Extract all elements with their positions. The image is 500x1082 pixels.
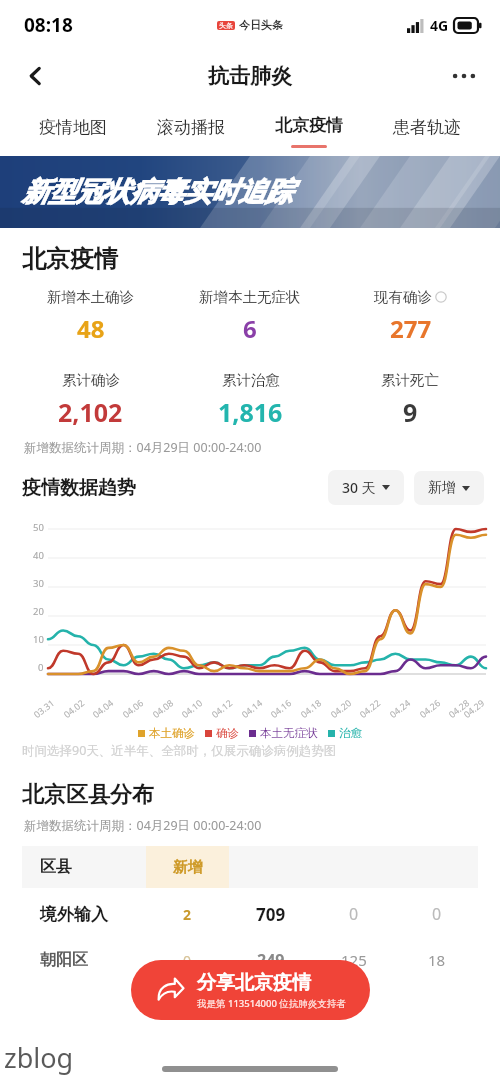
button[interactable]: 本土确诊	[138, 726, 195, 740]
button[interactable]: 本土无症状	[249, 726, 318, 740]
button[interactable]: 疫情地图	[14, 102, 132, 150]
staticText: 48	[77, 312, 105, 345]
button[interactable]: Back	[14, 54, 58, 98]
staticText: 10	[33, 633, 44, 646]
button[interactable]: 滚动播报	[132, 102, 250, 150]
staticText: 新增本土无症状	[199, 288, 301, 306]
staticText: 0	[38, 661, 44, 674]
staticText: 1,816	[218, 395, 283, 429]
staticText: 北京疫情	[275, 115, 343, 136]
staticText: 277	[390, 312, 432, 345]
button[interactable]: More options	[442, 54, 486, 98]
staticText: 累计确诊	[62, 371, 120, 389]
button[interactable]: 确诊	[205, 726, 239, 740]
button[interactable]: 累计死亡	[381, 371, 439, 429]
staticText: 北京区县分布	[22, 781, 154, 809]
staticText: 时间选择90天、近半年、全部时，仅展示确诊病例趋势图	[22, 742, 337, 759]
staticText: 新增数据统计周期：04月29日 00:00-24:00	[24, 817, 262, 834]
staticText: 患者轨迹	[393, 117, 461, 138]
button[interactable]: 30 天	[328, 470, 404, 505]
button[interactable]: 治愈	[328, 726, 362, 740]
staticText: 现有确诊	[374, 288, 432, 306]
staticText: 04.29	[461, 696, 487, 720]
staticText: 0	[432, 903, 442, 925]
staticText: 新增数据统计周期：04月29日 00:00-24:00	[24, 439, 262, 456]
button[interactable]: 新增	[414, 471, 484, 505]
staticText: 04.26	[417, 696, 443, 720]
staticText: 抗击肺炎	[208, 63, 292, 89]
staticText: 50	[33, 521, 44, 534]
staticText: 40	[33, 549, 44, 562]
button[interactable]: 朝阳区	[22, 940, 478, 980]
staticText: 04.04	[90, 696, 116, 720]
staticText: 04.08	[150, 696, 176, 720]
staticText: 新增	[173, 858, 203, 877]
staticText: 04.02	[61, 696, 87, 720]
staticText: 新增	[428, 479, 456, 497]
staticText: 朝阳区	[40, 950, 88, 970]
staticText: 0	[349, 903, 359, 925]
staticText: 6	[243, 312, 257, 345]
staticText: 新增本土确诊	[47, 288, 134, 306]
button[interactable]: 境外输入	[22, 888, 478, 940]
staticText: 30 天	[342, 478, 376, 497]
staticText: 04.22	[357, 696, 383, 720]
staticText: 30	[33, 577, 44, 590]
staticText: 区县	[40, 857, 72, 877]
staticText: 04.28	[446, 696, 472, 720]
staticText: 04.16	[268, 696, 294, 720]
staticText: 04.12	[209, 696, 235, 720]
staticText: 249	[257, 949, 285, 971]
staticText: 疫情数据趋势	[22, 476, 136, 500]
staticText: 04.06	[120, 696, 146, 720]
staticText: 4G	[430, 16, 449, 35]
staticText: 04.18	[298, 696, 324, 720]
staticText: 分享北京疫情	[197, 971, 311, 995]
staticText: 境外输入	[40, 904, 108, 925]
button[interactable]: 新增本土无症状	[199, 288, 301, 345]
staticText: 04.14	[239, 696, 265, 720]
staticText: 滚动播报	[157, 117, 225, 138]
staticText: 20	[33, 605, 44, 618]
staticText: 头条	[219, 21, 233, 30]
staticText: 本土无症状	[260, 726, 318, 740]
button[interactable]: 患者轨迹	[368, 102, 486, 150]
staticText: 确诊	[216, 726, 239, 740]
staticText: 我是第 113514000 位抗肺炎支持者	[197, 997, 346, 1010]
staticText: 125	[341, 950, 367, 970]
button[interactable]: 累计确诊	[58, 371, 123, 429]
staticText: 04.10	[179, 696, 205, 720]
staticText: 9	[403, 395, 418, 429]
staticText: 治愈	[339, 726, 362, 740]
button[interactable]: 北京疫情	[250, 102, 368, 150]
staticText: 累计死亡	[381, 371, 439, 389]
staticText: 北京疫情	[22, 244, 118, 274]
staticText: 03.31	[31, 696, 57, 720]
staticText: 2	[183, 905, 192, 924]
staticText: 709	[256, 903, 286, 926]
staticText: 今日头条	[239, 18, 283, 32]
button[interactable]: 新增本土确诊	[47, 288, 134, 345]
button[interactable]: 分享北京疫情	[131, 960, 370, 1020]
button[interactable]: 累计治愈	[218, 371, 283, 429]
staticText: 18	[428, 950, 446, 970]
staticText: 新型冠状病毒实时追踪	[22, 175, 292, 209]
staticText: 04.24	[387, 696, 413, 720]
staticText: zblog	[4, 1039, 74, 1076]
staticText: 04.20	[328, 696, 354, 720]
staticText: 本土确诊	[149, 726, 195, 740]
staticText: 0	[183, 951, 192, 970]
staticText: 累计治愈	[222, 371, 280, 389]
button[interactable]: 现有确诊	[374, 288, 447, 345]
staticText: 疫情地图	[39, 117, 107, 138]
staticText: 08:18	[24, 12, 73, 38]
staticText: 2,102	[58, 395, 123, 429]
